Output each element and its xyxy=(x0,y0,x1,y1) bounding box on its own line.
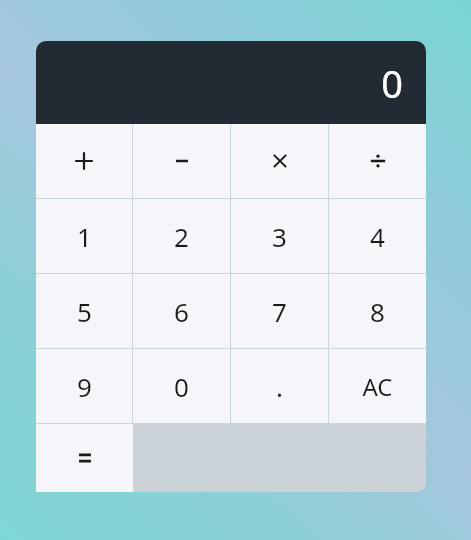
staticText: 1 xyxy=(77,219,92,254)
staticText: 7 xyxy=(272,294,287,329)
button[interactable]: Equals xyxy=(36,424,133,492)
button[interactable]: 1 xyxy=(36,199,132,273)
staticText: 6 xyxy=(174,294,189,329)
button[interactable]: All clear xyxy=(329,349,426,423)
button[interactable]: Multiply xyxy=(231,124,328,198)
button[interactable]: 9 xyxy=(36,349,132,423)
button[interactable]: 4 xyxy=(329,199,426,273)
staticText: 2 xyxy=(174,219,189,254)
staticText: AC xyxy=(362,370,393,403)
button[interactable]: Divide xyxy=(329,124,426,198)
button[interactable]: 0 xyxy=(133,349,230,423)
button[interactable]: 6 xyxy=(133,274,230,348)
button[interactable]: Decimal point xyxy=(231,349,328,423)
button[interactable]: 2 xyxy=(133,199,230,273)
button[interactable]: 5 xyxy=(36,274,132,348)
button[interactable]: 7 xyxy=(231,274,328,348)
staticText: 9 xyxy=(77,369,92,404)
staticText: 0 xyxy=(174,369,189,404)
staticText: . xyxy=(276,369,283,404)
staticText: 0 xyxy=(381,57,403,109)
button[interactable]: 8 xyxy=(329,274,426,348)
staticText: 4 xyxy=(370,219,385,254)
button[interactable]: 3 xyxy=(231,199,328,273)
staticText: 5 xyxy=(77,294,92,329)
button[interactable]: Plus xyxy=(36,124,132,198)
button[interactable]: Minus xyxy=(133,124,230,198)
staticText: 3 xyxy=(272,219,287,254)
staticText: 8 xyxy=(370,294,385,329)
